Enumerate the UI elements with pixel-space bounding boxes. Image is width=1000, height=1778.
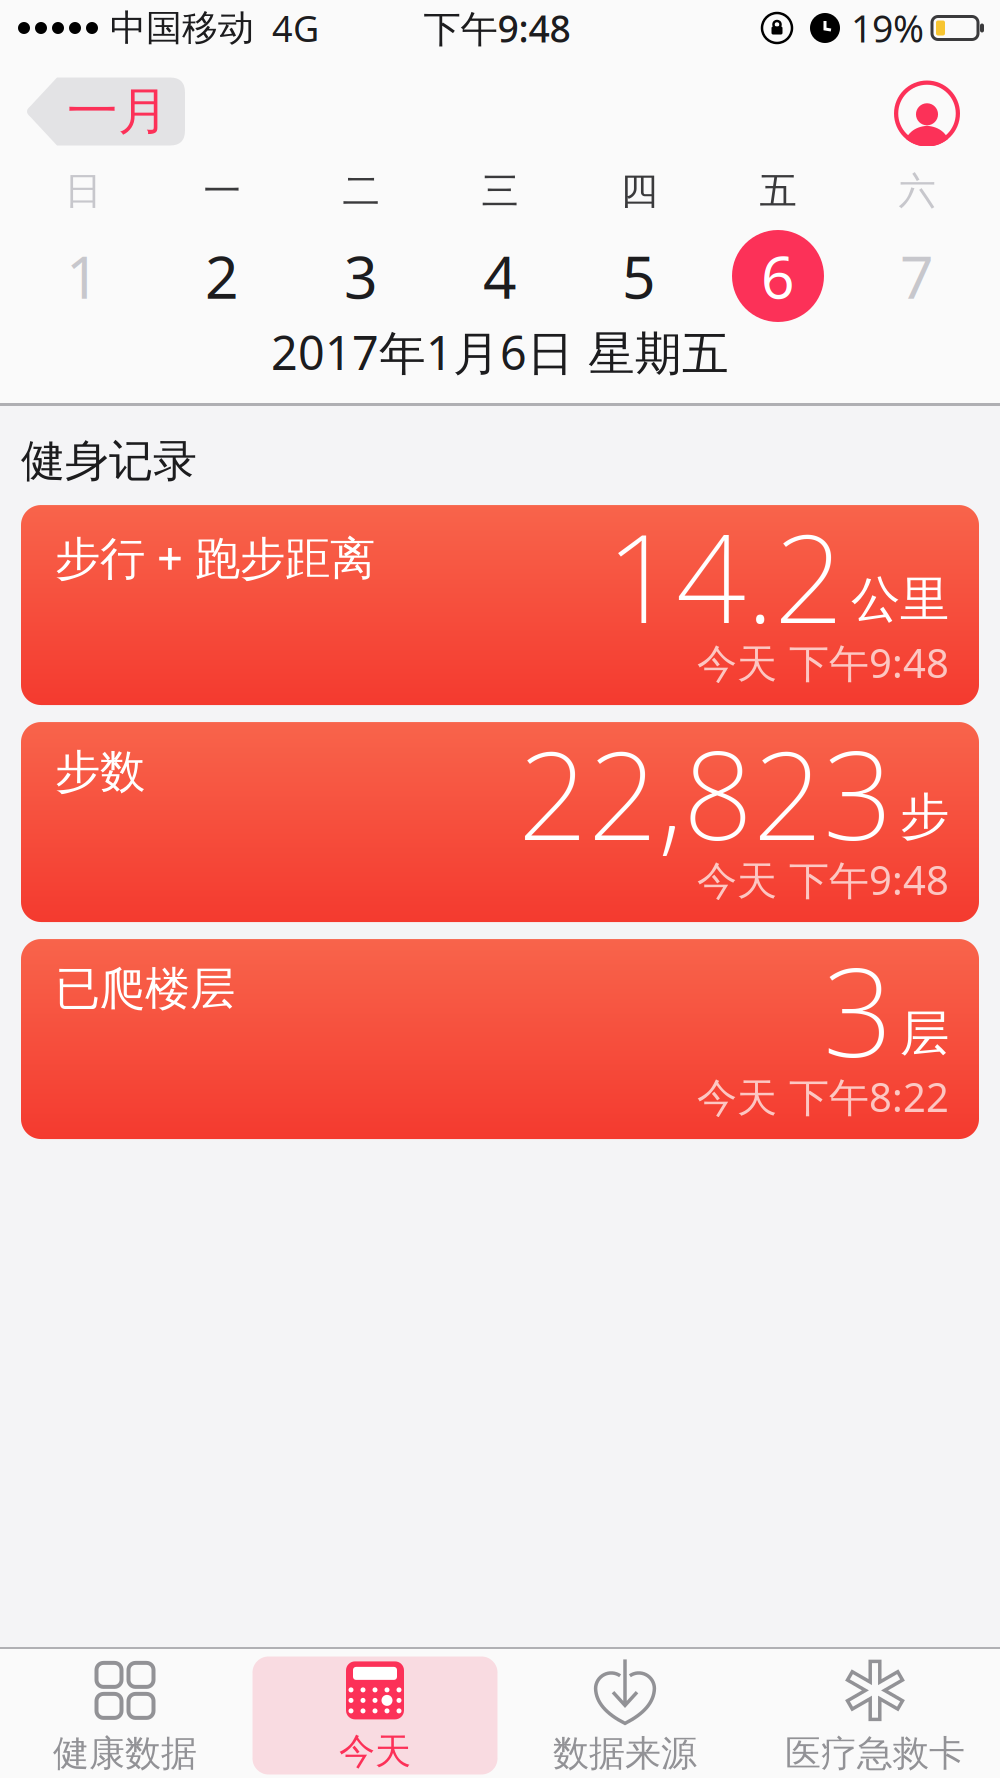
staticText: 4G: [272, 4, 319, 52]
staticText: 层: [900, 1003, 949, 1064]
staticText: 14.2: [606, 494, 844, 657]
button[interactable]: 返回一月: [25, 77, 185, 145]
staticText: 一月: [67, 80, 169, 143]
staticText: 5: [622, 237, 656, 315]
button[interactable]: 6: [708, 230, 847, 322]
button[interactable]: 今天: [250, 1653, 500, 1774]
staticText: 中国移动: [110, 6, 254, 50]
staticText: 步: [900, 786, 949, 847]
button[interactable]: 健康数据: [0, 1651, 250, 1776]
staticText: 下午9:48: [423, 3, 570, 53]
button[interactable]: 2: [152, 230, 291, 322]
staticText: 今天 下午9:48: [697, 853, 949, 906]
staticText: 二: [342, 168, 379, 214]
button[interactable]: 3: [291, 230, 430, 322]
staticText: 19%: [851, 3, 924, 53]
button[interactable]: 7: [847, 230, 986, 322]
staticText: 今天: [339, 1729, 411, 1774]
staticText: 4: [483, 237, 517, 315]
staticText: 四: [620, 168, 657, 214]
staticText: 步行 + 跑步距离: [55, 527, 375, 587]
button[interactable]: 步数: [21, 722, 979, 922]
button[interactable]: 已爬楼层: [21, 939, 979, 1139]
staticText: 步数: [55, 744, 145, 800]
staticText: 今天 下午9:48: [697, 636, 949, 689]
staticText: 2017年1月6日 星期五: [271, 321, 729, 383]
button[interactable]: 医疗急救卡: [750, 1651, 1000, 1776]
button[interactable]: 4: [430, 230, 569, 322]
button[interactable]: 步行 + 跑步距离: [21, 505, 979, 705]
staticText: 今天 下午8:22: [697, 1070, 949, 1123]
staticText: 健康数据: [53, 1731, 197, 1776]
staticText: 医疗急救卡: [785, 1731, 965, 1776]
staticText: 一: [203, 168, 240, 214]
staticText: 3: [823, 928, 893, 1091]
staticText: 健身记录: [21, 434, 197, 488]
staticText: 3: [344, 237, 378, 315]
staticText: 已爬楼层: [55, 961, 235, 1017]
staticText: 公里: [851, 569, 949, 630]
staticText: 数据来源: [553, 1731, 697, 1776]
staticText: 22,823: [518, 711, 893, 874]
button[interactable]: 个人资料: [894, 80, 960, 146]
staticText: 日: [64, 168, 101, 214]
staticText: 三: [481, 168, 518, 214]
button[interactable]: 1: [13, 230, 152, 322]
staticText: 7: [900, 237, 934, 315]
button[interactable]: 数据来源: [500, 1651, 750, 1776]
staticText: 6: [761, 237, 795, 315]
staticText: 五: [759, 168, 796, 214]
staticText: 1: [66, 237, 100, 315]
staticText: 2: [205, 237, 239, 315]
staticText: 六: [898, 168, 935, 214]
button[interactable]: 5: [569, 230, 708, 322]
